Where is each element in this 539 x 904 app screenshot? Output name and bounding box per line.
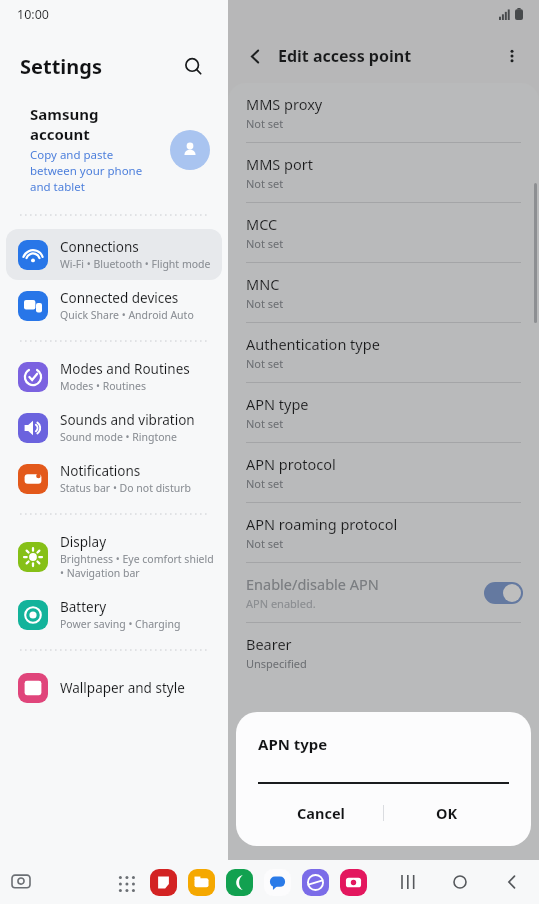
button[interactable]: Sounds and vibration [6, 402, 222, 453]
staticText: Connections [60, 238, 139, 256]
button[interactable]: Apps [113, 870, 139, 896]
staticText: Unspecified [246, 656, 307, 671]
staticText: and tablet [30, 179, 85, 195]
staticText: Not set [246, 536, 284, 551]
button[interactable]: Back [240, 41, 270, 71]
staticText: Power saving • Charging [60, 617, 181, 631]
staticText: Settings [20, 53, 102, 80]
button[interactable]: More options [497, 41, 527, 71]
button[interactable]: MNC [228, 263, 539, 322]
staticText: Not set [246, 416, 284, 431]
staticText: Not set [246, 116, 284, 131]
staticText: Wi-Fi • Bluetooth • Flight mode [60, 257, 211, 271]
staticText: Sounds and vibration [60, 411, 195, 429]
staticText: APN type [246, 394, 309, 414]
button[interactable]: MMS port [228, 143, 539, 202]
staticText: Not set [246, 476, 284, 491]
button[interactable]: App [226, 869, 253, 896]
button[interactable]: Wallpaper and style [6, 664, 222, 712]
button[interactable]: Connections [6, 229, 222, 280]
button[interactable]: Search [178, 51, 208, 81]
staticText: Not set [246, 236, 284, 251]
staticText: OK [436, 803, 458, 823]
button[interactable]: MCC [228, 203, 539, 262]
staticText: Enable/disable APN [246, 574, 379, 594]
staticText: APN protocol [246, 454, 336, 474]
staticText: MNC [246, 274, 280, 294]
staticText: account [30, 124, 90, 144]
staticText: Copy and paste [30, 147, 114, 163]
staticText: Connected devices [60, 289, 179, 307]
button[interactable]: APN roaming protocol [228, 503, 539, 562]
staticText: APN roaming protocol [246, 514, 398, 534]
staticText: Not set [246, 176, 284, 191]
button[interactable]: Samsung [0, 104, 228, 195]
staticText: Not set [246, 296, 284, 311]
button[interactable]: App [302, 869, 329, 896]
staticText: MCC [246, 214, 278, 234]
button[interactable]: App [188, 869, 215, 896]
staticText: Notifications [60, 462, 141, 480]
button[interactable]: Back [499, 869, 525, 895]
button[interactable]: Recents [395, 869, 421, 895]
staticText: MMS proxy [246, 94, 323, 114]
button[interactable]: App [340, 869, 367, 896]
staticText: Samsung [30, 104, 99, 124]
staticText: Not set [246, 356, 284, 371]
staticText: MMS port [246, 154, 313, 174]
staticText: Brightness • Eye comfort shield • Naviga… [60, 552, 214, 580]
staticText: Modes and Routines [60, 360, 190, 378]
button[interactable]: Connected devices [6, 280, 222, 331]
staticText: APN enabled. [246, 596, 316, 611]
button[interactable]: Multi window [4, 865, 38, 899]
button[interactable]: Home [447, 869, 473, 895]
button[interactable]: APN type [228, 383, 539, 442]
button[interactable]: MMS proxy [228, 83, 539, 142]
button[interactable]: OK [384, 794, 509, 832]
staticText: Display [60, 533, 107, 551]
staticText: Cancel [297, 803, 345, 823]
button[interactable]: Battery [6, 589, 222, 640]
button[interactable]: Notifications [6, 453, 222, 504]
button[interactable]: Display [6, 524, 222, 589]
staticText: Sound mode • Ringtone [60, 430, 177, 444]
staticText: APN type [258, 734, 328, 754]
button[interactable]: APN protocol [228, 443, 539, 502]
button[interactable]: App [150, 869, 177, 896]
staticText: Modes • Routines [60, 379, 147, 393]
button[interactable]: App [264, 869, 291, 896]
staticText: 10:00 [17, 6, 49, 23]
staticText: between your phone [30, 163, 143, 179]
button[interactable]: Modes and Routines [6, 351, 222, 402]
staticText: Authentication type [246, 334, 380, 354]
button[interactable]: Cancel [258, 794, 383, 832]
staticText: Status bar • Do not disturb [60, 481, 191, 495]
button[interactable]: Enable/disable APN [228, 563, 539, 622]
button[interactable]: Enable APN [484, 582, 523, 604]
button[interactable]: Bearer [228, 623, 539, 682]
staticText: Edit access point [278, 45, 412, 67]
staticText: Quick Share • Android Auto [60, 308, 194, 322]
staticText: Bearer [246, 634, 292, 654]
button[interactable]: Authentication type [228, 323, 539, 382]
staticText: Battery [60, 598, 107, 616]
staticText: Wallpaper and style [60, 679, 185, 697]
